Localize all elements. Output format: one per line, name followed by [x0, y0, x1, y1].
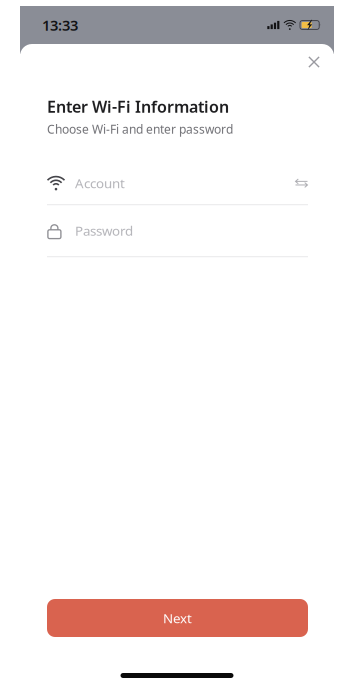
button[interactable]: Next	[47, 599, 308, 637]
staticText: Account	[75, 174, 125, 192]
staticText: Enter Wi-Fi Information	[47, 96, 229, 117]
staticText: Choose Wi-Fi and enter password	[47, 121, 233, 137]
staticText: 13:33	[42, 15, 78, 35]
staticText: Password	[75, 222, 133, 239]
button[interactable]: Close	[301, 49, 327, 75]
button[interactable]: Swap	[295, 178, 308, 188]
staticText: Next	[163, 609, 192, 627]
